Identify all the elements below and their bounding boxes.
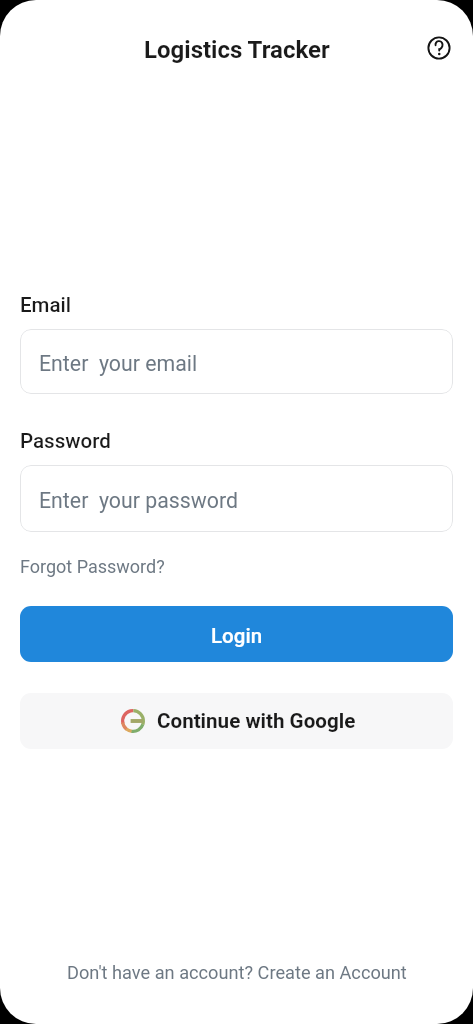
staticText: Login (211, 624, 263, 648)
staticText: Continue with Google (157, 709, 356, 733)
button[interactable]: Forgot Password? (20, 556, 165, 577)
staticText: Email (20, 293, 72, 317)
button[interactable]: Login (20, 606, 453, 662)
staticText: Logistics Tracker (144, 36, 330, 64)
staticText: Password (20, 429, 111, 453)
button[interactable]: Don't have an account? Create an Account (0, 950, 473, 994)
staticText: Enter your email (39, 351, 198, 376)
button[interactable]: Continue with Google (20, 693, 453, 749)
staticText: Forgot Password? (20, 556, 165, 577)
staticText: Enter your password (39, 488, 238, 513)
button[interactable]: Help (422, 31, 456, 65)
button[interactable]: Enter your email (20, 329, 453, 394)
button[interactable]: Enter your password (20, 465, 453, 532)
staticText: Don't have an account? Create an Account (67, 962, 407, 983)
